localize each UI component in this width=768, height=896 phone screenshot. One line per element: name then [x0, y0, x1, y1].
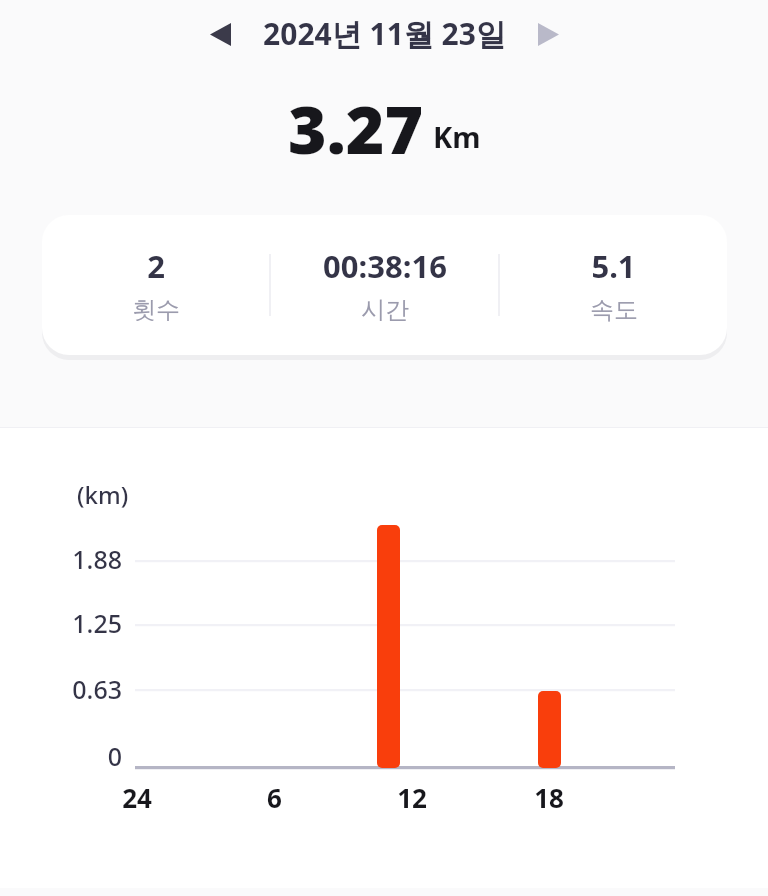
- button[interactable]: 2: [42, 215, 727, 355]
- button[interactable]: 00:38:16: [271, 215, 498, 355]
- staticText: 2: [147, 245, 165, 287]
- staticText: 24: [122, 780, 152, 815]
- staticText: 12: [397, 780, 427, 815]
- staticText: 1.25: [72, 606, 122, 640]
- button[interactable]: 5.1: [500, 215, 727, 355]
- staticText: 3.27: [288, 83, 424, 165]
- staticText: 0: [107, 739, 122, 773]
- button[interactable]: 2024년 11월 23일: [263, 13, 506, 54]
- staticText: Km: [433, 117, 481, 156]
- button[interactable]: Next day: [524, 11, 572, 57]
- staticText: (km): [77, 478, 129, 511]
- staticText: 5.1: [591, 245, 636, 287]
- staticText: 횟수: [132, 295, 180, 325]
- staticText: 2024년 11월 23일: [263, 13, 506, 54]
- staticText: 18: [534, 780, 564, 815]
- staticText: 속도: [590, 295, 638, 325]
- staticText: 1.88: [72, 542, 122, 576]
- button[interactable]: 2: [42, 215, 269, 355]
- staticText: 00:38:16: [323, 245, 447, 287]
- button[interactable]: Previous day: [196, 11, 244, 57]
- staticText: 0.63: [72, 672, 122, 706]
- staticText: 6: [267, 780, 282, 815]
- staticText: 시간: [361, 295, 409, 325]
